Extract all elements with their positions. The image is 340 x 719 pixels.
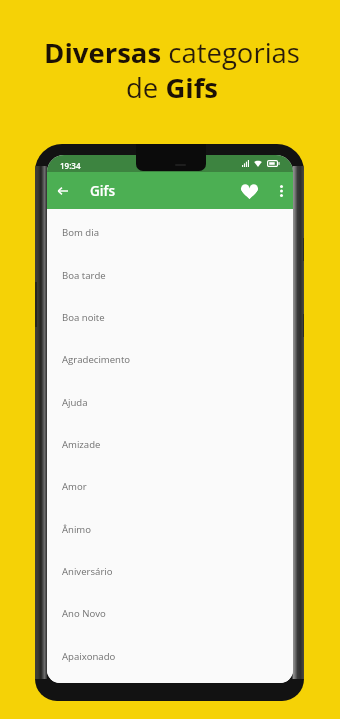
- button[interactable]: Apaixonado: [47, 635, 293, 677]
- staticText: Boa noite: [62, 311, 105, 324]
- button[interactable]: Bom dia: [47, 211, 293, 253]
- button[interactable]: Ajuda: [47, 381, 293, 423]
- staticText: Ânimo: [62, 523, 92, 536]
- button[interactable]: Back: [51, 180, 73, 202]
- staticText: Boa tarde: [62, 269, 106, 282]
- button[interactable]: Agradecimento: [47, 338, 293, 380]
- staticText: Ajuda: [62, 396, 88, 409]
- button[interactable]: Favorites: [236, 178, 262, 204]
- staticText: Agradecimento: [62, 353, 131, 366]
- button[interactable]: Boa tarde: [47, 254, 293, 296]
- staticText: Amor: [62, 480, 87, 493]
- button[interactable]: More options: [270, 180, 292, 202]
- button[interactable]: Amizade: [47, 423, 293, 465]
- staticText: Bom dia: [62, 226, 99, 239]
- button[interactable]: Boa noite: [47, 296, 293, 338]
- staticText: Ano Novo: [62, 607, 106, 620]
- staticText: Gifs: [90, 182, 116, 200]
- staticText: Aniversário: [62, 565, 113, 578]
- staticText: 19:34: [60, 160, 81, 171]
- staticText: Diversas categorias de Gifs: [44, 34, 300, 107]
- button[interactable]: Amor: [47, 465, 293, 507]
- button[interactable]: Ano Novo: [47, 592, 293, 634]
- button[interactable]: Ânimo: [47, 508, 293, 550]
- staticText: Amizade: [62, 438, 101, 451]
- staticText: Apaixonado: [62, 650, 116, 663]
- button[interactable]: Aniversário: [47, 550, 293, 592]
